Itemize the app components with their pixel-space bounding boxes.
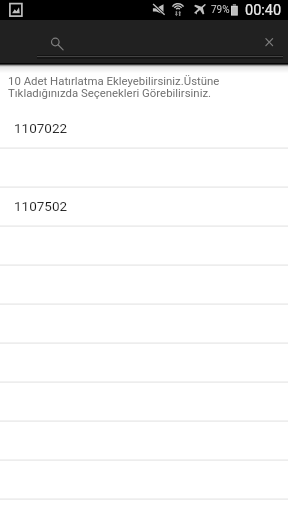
- button[interactable]: Search: [44, 30, 70, 56]
- button[interactable]: [0, 266, 288, 305]
- staticText: 00:40: [245, 2, 282, 19]
- button[interactable]: [0, 422, 288, 461]
- staticText: 79%: [211, 4, 230, 16]
- button[interactable]: [0, 305, 288, 344]
- button[interactable]: 1107502: [0, 188, 288, 227]
- staticText: 1107502: [14, 198, 68, 214]
- staticText: 1107022: [14, 120, 68, 136]
- button[interactable]: [0, 461, 288, 500]
- button[interactable]: [0, 383, 288, 422]
- staticText: 10 Adet Hatırlatma Ekleyebilirsiniz.Üstü…: [8, 74, 220, 100]
- button[interactable]: [0, 344, 288, 383]
- button[interactable]: Search reminders: [37, 24, 283, 59]
- button[interactable]: Clear search: [256, 28, 282, 54]
- button[interactable]: [0, 227, 288, 266]
- button[interactable]: [0, 149, 288, 188]
- button[interactable]: 1107022: [0, 110, 288, 149]
